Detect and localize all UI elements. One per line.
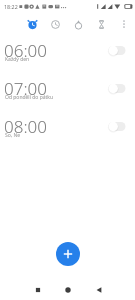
staticText: So, Ne: [5, 132, 21, 139]
button[interactable]: Stopwatch: [68, 14, 88, 34]
button[interactable]: 06:00: [0, 35, 135, 73]
button[interactable]: Recents: [28, 280, 48, 300]
staticText: Každý den: [5, 56, 30, 63]
button[interactable]: Toggle alarm: [108, 83, 126, 94]
button[interactable]: Toggle alarm: [108, 45, 126, 56]
staticText: 08:00: [4, 115, 47, 138]
button[interactable]: More options: [115, 15, 133, 33]
staticText: 18:22: [4, 3, 18, 10]
button[interactable]: Timer: [91, 14, 111, 34]
button[interactable]: 07:00: [0, 73, 135, 111]
button[interactable]: Alarm: [22, 14, 42, 34]
button[interactable]: Back: [89, 280, 109, 300]
staticText: 06:00: [4, 39, 47, 62]
staticText: Od pondělí do pátku: [5, 94, 54, 101]
button[interactable]: Home: [58, 280, 78, 300]
button[interactable]: Toggle alarm: [108, 121, 126, 132]
staticText: 07:00: [4, 77, 47, 100]
button[interactable]: Clock: [45, 14, 65, 34]
button[interactable]: 08:00: [0, 111, 135, 149]
button[interactable]: Add alarm: [56, 242, 80, 266]
